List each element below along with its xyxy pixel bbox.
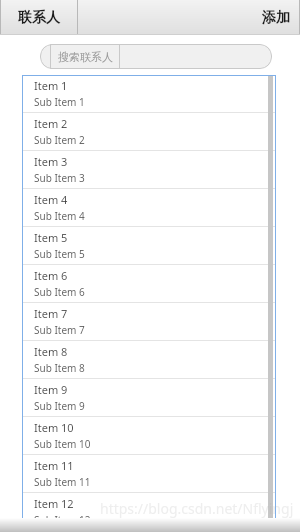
button[interactable]: 添加 — [78, 0, 300, 35]
button[interactable]: 搜索联系人 — [40, 44, 272, 69]
staticText: Sub Item 1 — [34, 95, 85, 109]
staticText: Item 10 — [34, 420, 74, 435]
button[interactable]: Item 2 — [22, 113, 276, 151]
staticText: Sub Item 2 — [34, 133, 85, 147]
staticText: Sub Item 9 — [34, 399, 85, 413]
button[interactable]: Item 6 — [22, 265, 276, 303]
staticText: Item 2 — [34, 116, 68, 131]
staticText: 搜索联系人 — [58, 50, 113, 64]
staticText: Item 12 — [34, 496, 74, 511]
staticText: Sub Item 4 — [34, 209, 85, 223]
staticText: Sub Item 11 — [34, 475, 91, 489]
button[interactable]: Item 12 — [22, 493, 276, 531]
button[interactable]: Item 4 — [22, 189, 276, 227]
staticText: Item 4 — [34, 192, 68, 207]
staticText: Sub Item 5 — [34, 247, 85, 261]
staticText: Item 7 — [34, 306, 68, 321]
button[interactable]: Item 11 — [22, 455, 276, 493]
button[interactable]: Item 5 — [22, 227, 276, 265]
button[interactable]: Item 1 — [22, 75, 276, 113]
staticText: 添加 — [262, 9, 290, 27]
staticText: Sub Item 7 — [34, 323, 85, 337]
staticText: https://blog.csdn.net/Nflyingj — [100, 499, 294, 518]
staticText: Sub Item 12 — [34, 513, 91, 527]
button[interactable]: Item 10 — [22, 417, 276, 455]
staticText: Item 9 — [34, 382, 68, 397]
staticText: Item 8 — [34, 344, 68, 359]
staticText: Sub Item 6 — [34, 285, 85, 299]
button[interactable]: Item 8 — [22, 341, 276, 379]
staticText: Sub Item 8 — [34, 361, 85, 375]
staticText: Item 3 — [34, 154, 68, 169]
staticText: Sub Item 10 — [34, 437, 91, 451]
staticText: Sub Item 3 — [34, 171, 85, 185]
staticText: 联系人 — [18, 9, 60, 27]
staticText: Item 11 — [34, 458, 74, 473]
button[interactable]: Item 9 — [22, 379, 276, 417]
button[interactable]: Item 3 — [22, 151, 276, 189]
staticText: Item 1 — [34, 78, 68, 93]
button[interactable]: Item 7 — [22, 303, 276, 341]
staticText: Item 6 — [34, 268, 68, 283]
button[interactable]: 联系人 — [0, 0, 77, 35]
staticText: Item 5 — [34, 230, 68, 245]
